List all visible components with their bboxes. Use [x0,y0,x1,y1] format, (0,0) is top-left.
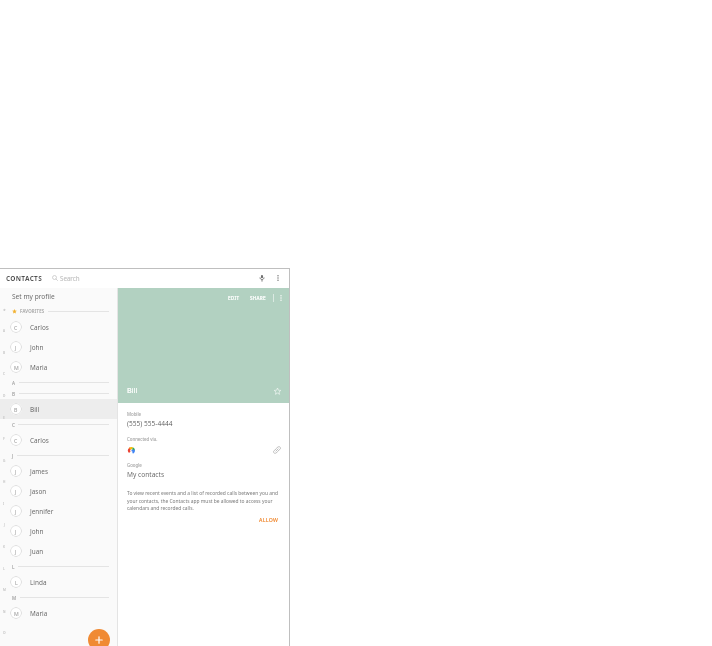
staticText: My contacts [127,470,165,479]
staticText: K [3,545,5,549]
button[interactable]: Voice search [255,271,269,285]
staticText: FAVORITES [20,308,45,314]
staticText: Google [127,462,142,468]
staticText: A [3,329,6,333]
staticText: To view recent events and a list of reco… [127,490,282,511]
button[interactable]: J [0,461,117,481]
button[interactable]: J [0,541,117,561]
staticText: L [15,579,18,586]
staticText: Jason [30,487,47,496]
button[interactable]: M [0,357,117,377]
staticText: Search [60,274,80,282]
button[interactable]: J [0,337,117,357]
staticText: J [12,453,14,459]
staticText: C [14,437,18,444]
staticText: B [3,351,6,355]
staticText: John [30,343,44,352]
staticText: CONTACTS [6,274,43,283]
button[interactable]: C [0,317,117,337]
staticText: J [15,344,17,351]
button[interactable]: Search [52,274,255,282]
staticText: Jennifer [30,507,54,516]
staticText: Mobile [127,411,142,417]
staticText: J [15,508,17,515]
staticText: G [3,459,6,463]
staticText: E [3,416,5,420]
staticText: Bill [30,405,40,414]
staticText: A [12,380,16,386]
staticText: C [12,422,15,428]
staticText: J [15,548,17,555]
staticText: M [14,364,19,371]
button[interactable]: J [0,501,117,521]
staticText: H [3,480,6,484]
button[interactable]: More options [272,272,284,284]
staticText: ALLOW [259,516,279,523]
button[interactable]: J [0,481,117,501]
button[interactable]: (555) 555-4444 [127,419,173,428]
button[interactable]: L [0,572,117,592]
staticText: Bill [127,385,138,395]
button[interactable]: Add contact [88,629,110,646]
staticText: Linda [30,578,47,587]
staticText: (555) 555-4444 [127,419,173,428]
staticText: James [30,467,48,476]
staticText: M [14,610,19,617]
staticText: Juan [30,547,44,556]
staticText: EDIT [228,295,240,301]
staticText: SHARE [250,295,266,301]
staticText: B [12,391,16,397]
staticText: Maria [30,363,48,372]
staticText: D [3,394,6,398]
button[interactable]: Link contacts [271,444,282,455]
button[interactable]: EDIT [225,294,243,302]
staticText: Carlos [30,436,49,445]
staticText: B [14,406,18,413]
staticText: John [30,527,44,536]
button[interactable]: SHARE [247,294,269,302]
staticText: N [3,610,6,614]
staticText: L [12,564,15,570]
staticText: Carlos [30,323,49,332]
staticText: C [3,372,6,376]
staticText: J [15,488,17,495]
staticText: M [12,595,17,601]
button[interactable]: Google account [127,446,135,454]
button[interactable]: Set my profile [0,288,117,305]
staticText: Connected via. [127,436,158,442]
staticText: J [15,528,17,535]
staticText: L [3,567,5,571]
staticText: O [3,631,6,635]
button[interactable]: Favorite [272,386,282,396]
staticText: M [3,588,6,592]
button[interactable]: C [0,430,117,450]
staticText: J [15,468,17,475]
button[interactable]: ALLOW [127,514,282,525]
button[interactable]: M [0,603,117,623]
staticText: C [14,324,18,331]
staticText: Set my profile [12,292,55,301]
button[interactable]: More options [276,293,286,303]
staticText: F [3,437,5,441]
staticText: I [3,502,5,506]
staticText: Maria [30,609,48,618]
button[interactable]: B [0,399,117,419]
button[interactable]: J [0,521,117,541]
staticText: ★ [3,308,6,312]
